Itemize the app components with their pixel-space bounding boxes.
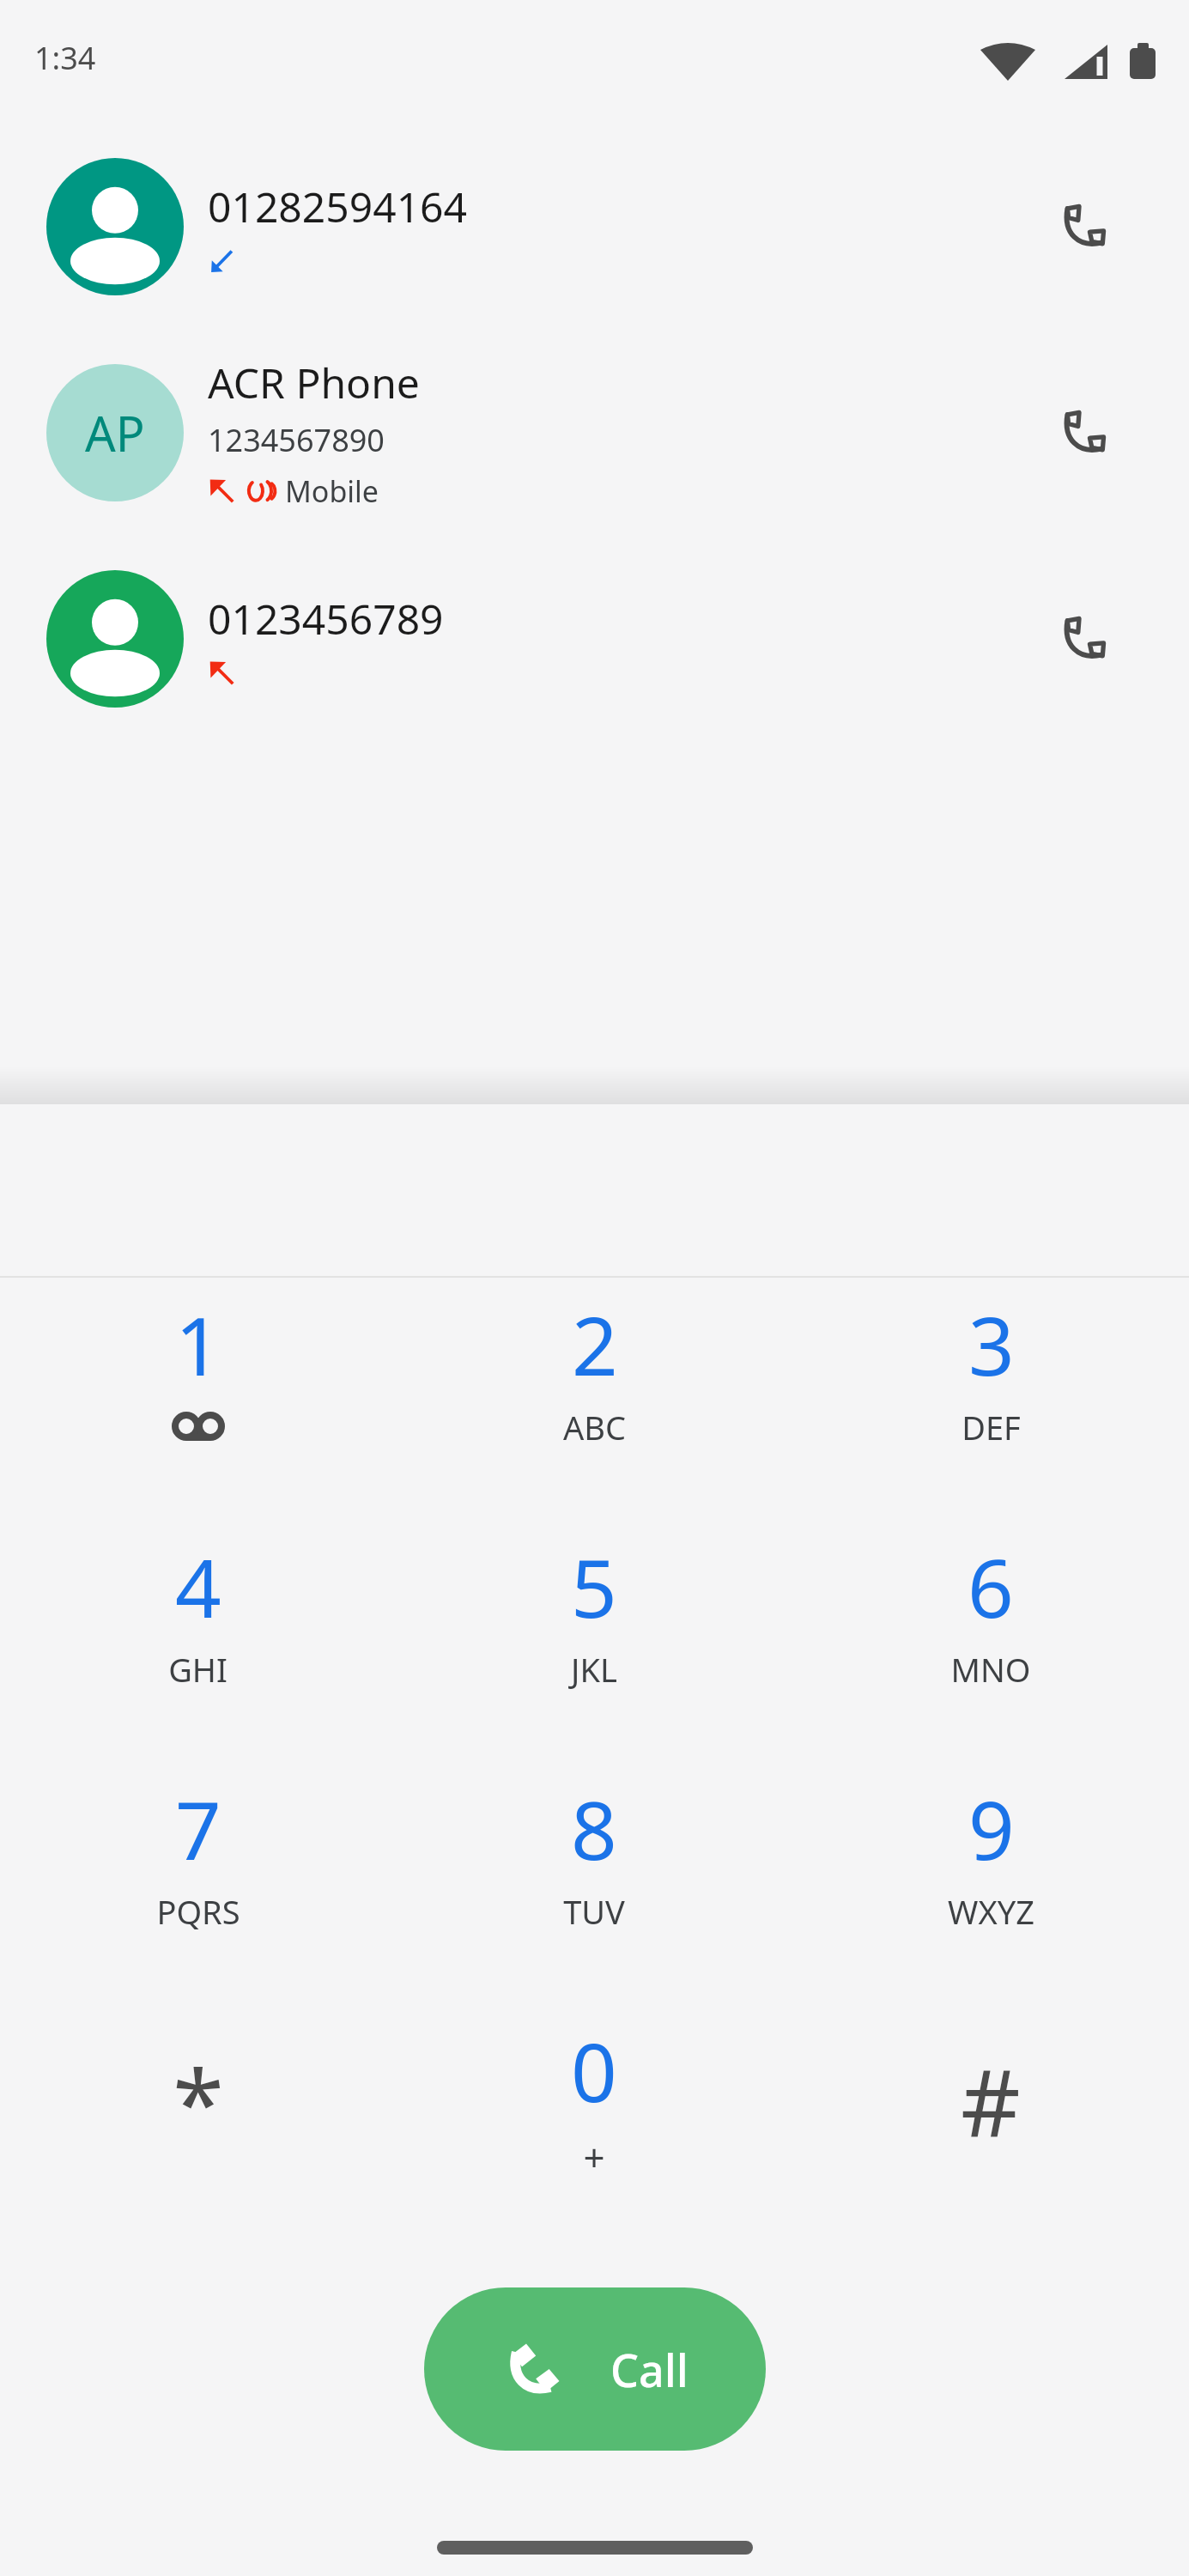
staticText: 3 xyxy=(968,1290,1015,1400)
button[interactable]: 7 xyxy=(0,1774,396,2016)
staticText: * xyxy=(173,2038,224,2165)
staticText: AP xyxy=(85,400,145,465)
staticText: ABC xyxy=(563,1405,626,1449)
staticText: WXYZ xyxy=(948,1889,1034,1934)
button[interactable]: # xyxy=(792,2016,1189,2258)
staticText: 0 xyxy=(571,2016,617,2126)
staticText: JKL xyxy=(571,1647,617,1692)
button[interactable]: 9 xyxy=(792,1774,1189,2016)
staticText: GHI xyxy=(168,1647,227,1692)
staticText: 4 xyxy=(175,1532,221,1642)
staticText: 01282594164 xyxy=(208,179,468,234)
button[interactable]: 3 xyxy=(792,1290,1189,1532)
staticText: 1:34 xyxy=(34,37,96,79)
button[interactable]: 0 xyxy=(396,2016,792,2258)
button[interactable]: 5 xyxy=(396,1532,792,1774)
staticText: 9 xyxy=(968,1774,1015,1884)
staticText: PQRS xyxy=(156,1889,240,1934)
staticText: 8 xyxy=(571,1774,617,1884)
button[interactable]: 0123456789 xyxy=(0,536,1189,742)
staticText: + xyxy=(583,2131,605,2183)
button[interactable]: AP xyxy=(0,330,1189,536)
staticText: 0123456789 xyxy=(208,591,444,647)
staticText: 2 xyxy=(572,1290,618,1400)
button[interactable]: 01282594164 xyxy=(0,124,1189,330)
button[interactable]: 4 xyxy=(0,1532,396,1774)
button[interactable]: Call ACR Phone xyxy=(1019,368,1148,497)
button[interactable]: Call 01282594164 xyxy=(1019,162,1148,291)
staticText: 1234567890 xyxy=(208,419,385,461)
staticText: # xyxy=(961,2038,1021,2165)
staticText: MNO xyxy=(950,1647,1031,1692)
staticText: 6 xyxy=(968,1532,1014,1642)
button[interactable]: 8 xyxy=(396,1774,792,2016)
button[interactable]: * xyxy=(0,2016,396,2258)
staticText: 5 xyxy=(571,1532,617,1642)
button[interactable]: 2 xyxy=(396,1290,792,1532)
button[interactable]: 6 xyxy=(792,1532,1189,1774)
button[interactable]: Call 0123456789 xyxy=(1019,574,1148,703)
staticText: 7 xyxy=(175,1774,221,1884)
staticText: DEF xyxy=(962,1405,1021,1449)
button[interactable]: 1 xyxy=(0,1290,396,1532)
button[interactable]: Call xyxy=(424,2287,766,2451)
staticText: Call xyxy=(610,2339,689,2400)
staticText: Mobile xyxy=(285,471,379,511)
staticText: 1 xyxy=(175,1290,221,1400)
staticText: TUV xyxy=(563,1889,625,1934)
staticText: ACR Phone xyxy=(208,355,420,410)
